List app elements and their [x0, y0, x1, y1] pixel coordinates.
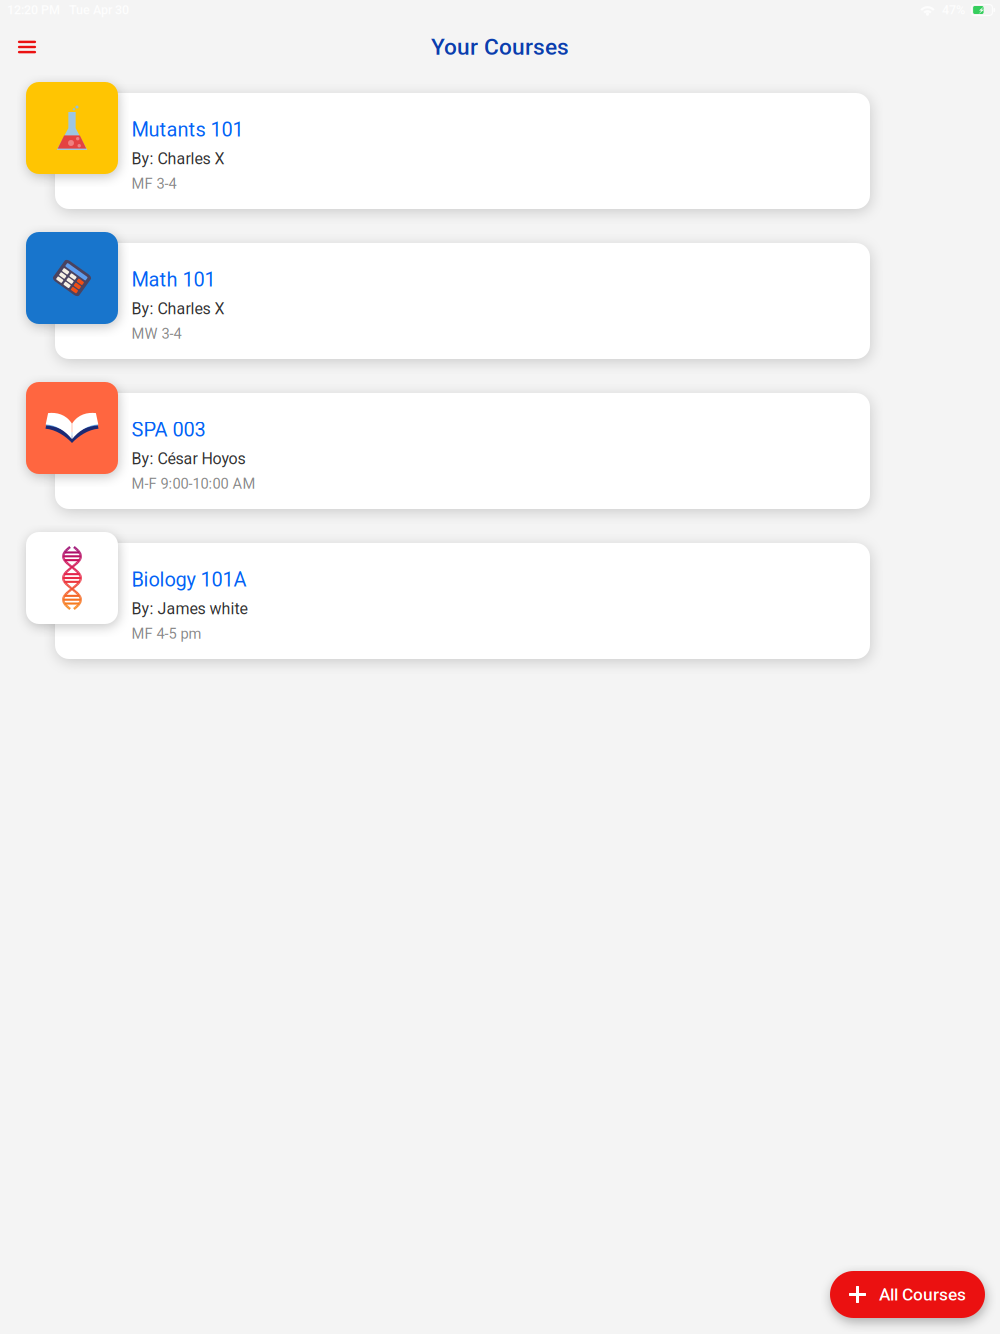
button[interactable]: Menu: [4, 24, 50, 70]
staticText: Mutants 101: [131, 118, 243, 141]
button[interactable]: Mutants 101: [0, 82, 1000, 209]
staticText: Your Courses: [431, 34, 569, 60]
staticText: By: James white: [131, 599, 247, 618]
staticText: Biology 101A: [131, 568, 246, 591]
staticText: All Courses: [879, 1284, 966, 1305]
staticText: By: César Hoyos: [131, 449, 245, 468]
staticText: By: Charles X: [131, 149, 224, 168]
staticText: By: Charles X: [131, 299, 224, 318]
button[interactable]: Biology 101A: [0, 532, 1000, 659]
button[interactable]: Math 101: [0, 232, 1000, 359]
staticText: MW 3-4: [131, 325, 181, 342]
staticText: Math 101: [131, 268, 215, 291]
staticText: M-F 9:00-10:00 AM: [131, 475, 255, 492]
button[interactable]: SPA 003: [0, 382, 1000, 509]
staticText: 12:20 PM Tue Apr 30: [7, 3, 129, 17]
staticText: MF 4-5 pm: [131, 625, 201, 642]
button[interactable]: All Courses: [830, 1271, 985, 1318]
staticText: MF 3-4: [131, 175, 176, 192]
staticText: SPA 003: [131, 418, 205, 441]
